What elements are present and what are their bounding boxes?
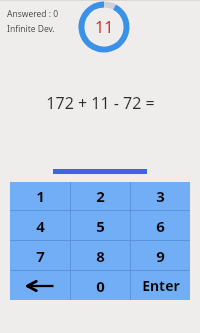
staticText: 2 — [96, 186, 105, 206]
button[interactable]: 9 — [131, 241, 190, 270]
staticText: 9 — [156, 246, 165, 266]
staticText: 6 — [156, 216, 165, 236]
button[interactable]: 1 — [10, 182, 70, 210]
staticText: Infinite Dev. — [7, 23, 55, 35]
button[interactable]: 8 — [71, 241, 130, 270]
staticText: 5 — [96, 216, 105, 236]
button[interactable]: 4 — [10, 211, 70, 240]
staticText: 0 — [96, 276, 105, 296]
button[interactable]: Enter — [131, 271, 190, 300]
staticText: Enter — [142, 276, 180, 295]
staticText: 172 + 11 - 72 = — [46, 92, 155, 114]
staticText: 8 — [96, 246, 105, 266]
button[interactable]: 5 — [71, 211, 130, 240]
staticText: 4 — [36, 216, 45, 236]
staticText: Answered : 0 — [7, 8, 59, 20]
button[interactable]: 2 — [71, 182, 130, 210]
button[interactable]: 3 — [131, 182, 190, 210]
staticText: 11 — [95, 16, 114, 38]
staticText: 1 — [36, 186, 45, 206]
staticText: 7 — [36, 246, 45, 266]
staticText: 3 — [156, 186, 165, 206]
button[interactable]: 6 — [131, 211, 190, 240]
button[interactable]: 7 — [10, 241, 70, 270]
button[interactable]: Backspace — [10, 271, 70, 300]
button[interactable]: 0 — [71, 271, 130, 300]
